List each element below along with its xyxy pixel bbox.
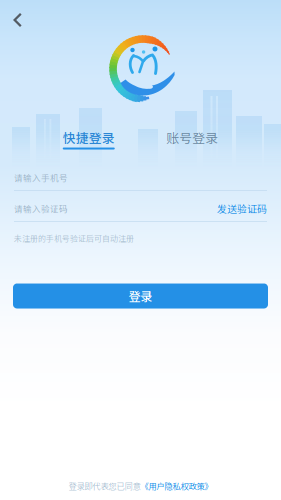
- staticText: 发送验证码: [217, 201, 267, 216]
- staticText: 《用户隐私权政策》: [140, 480, 212, 492]
- staticText: 未注册的手机号验证后可自动注册: [14, 232, 134, 244]
- staticText: 账号登录: [166, 128, 218, 147]
- button[interactable]: 快捷登录: [37, 130, 140, 149]
- button[interactable]: 发送验证码: [217, 201, 267, 216]
- staticText: 请输入手机号: [14, 171, 68, 184]
- staticText: 快捷登录: [63, 128, 115, 147]
- button[interactable]: Back: [3, 5, 37, 35]
- staticText: 请输入验证码: [14, 202, 68, 215]
- button[interactable]: 登录: [13, 283, 268, 308]
- staticText: 登录: [128, 287, 152, 305]
- button[interactable]: 《用户隐私权政策》: [140, 480, 212, 492]
- staticText: 登录即代表您已同意: [68, 480, 140, 492]
- button[interactable]: 账号登录: [140, 130, 244, 149]
